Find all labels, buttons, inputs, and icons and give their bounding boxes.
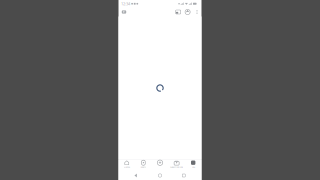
staticText: You xyxy=(192,165,195,168)
button[interactable]: Back xyxy=(130,172,142,179)
button[interactable]: Account xyxy=(183,7,192,16)
button[interactable]: Cast xyxy=(174,7,183,16)
staticText: Subscriptions xyxy=(170,165,183,168)
button[interactable]: YouTube home xyxy=(119,7,128,16)
button[interactable]: Recent apps xyxy=(178,172,190,179)
staticText: Home xyxy=(124,165,130,168)
button[interactable]: Shorts xyxy=(135,160,152,171)
button[interactable]: Home xyxy=(154,172,166,179)
button[interactable]: Home xyxy=(118,160,135,171)
button[interactable] xyxy=(152,160,168,171)
button[interactable]: You xyxy=(185,160,201,171)
button[interactable]: Subscriptions xyxy=(168,160,185,171)
button[interactable]: More options xyxy=(192,7,201,16)
staticText: Shorts xyxy=(140,165,146,168)
staticText: 12:34 xyxy=(121,1,130,6)
